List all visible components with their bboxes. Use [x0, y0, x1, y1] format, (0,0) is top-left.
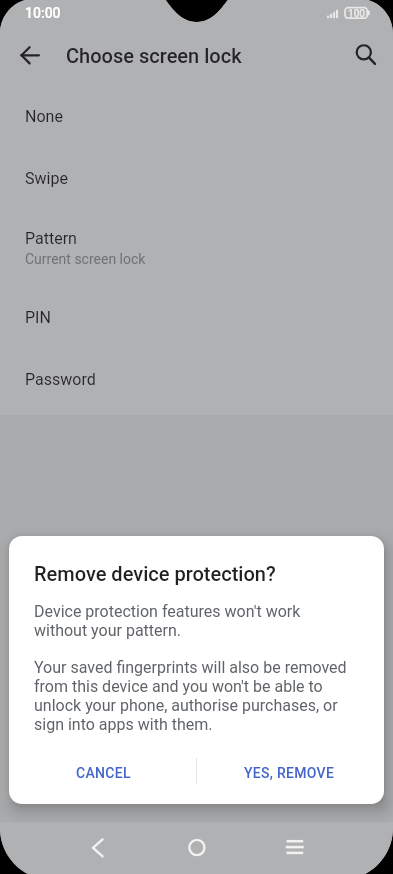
staticText: Your saved fingerprints will also be rem… — [34, 658, 352, 734]
staticText: Choose screen lock — [66, 44, 242, 67]
button[interactable]: Password — [0, 348, 393, 410]
button[interactable]: Navigate up — [6, 31, 54, 79]
button[interactable]: Swipe — [0, 147, 393, 209]
button[interactable]: YES, REMOVE — [225, 755, 353, 791]
button[interactable]: PIN — [0, 286, 393, 348]
staticText: Remove device protection? — [34, 562, 276, 585]
staticText: Current screen lock — [25, 251, 146, 267]
button[interactable]: Recent apps — [272, 824, 316, 868]
button[interactable]: Home — [175, 824, 219, 868]
staticText: CANCEL — [76, 765, 131, 781]
button[interactable]: None — [0, 85, 393, 147]
staticText: YES, REMOVE — [244, 765, 335, 781]
button[interactable]: Search — [340, 31, 388, 79]
staticText: None — [25, 107, 63, 126]
staticText: Pattern — [25, 229, 77, 248]
button[interactable]: Back — [74, 824, 118, 868]
staticText: Password — [25, 370, 96, 389]
button[interactable]: CANCEL — [60, 755, 146, 791]
staticText: PIN — [25, 308, 51, 327]
staticText: Device protection features won't work wi… — [34, 602, 352, 640]
staticText: 10:00 — [25, 5, 61, 21]
staticText: 100 — [348, 8, 366, 20]
staticText: Swipe — [25, 169, 68, 188]
button[interactable]: Pattern — [0, 209, 393, 286]
